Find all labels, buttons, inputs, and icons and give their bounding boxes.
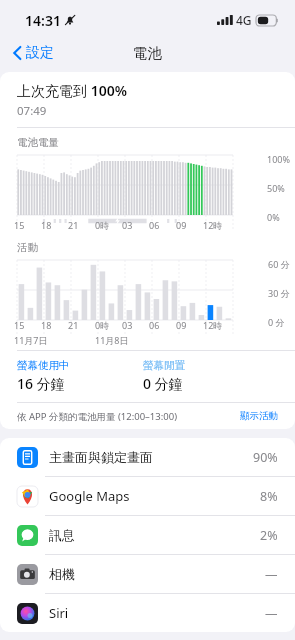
staticText: 0% <box>267 211 280 223</box>
staticText: 螢幕使用中 <box>17 359 70 372</box>
staticText: 0 分鐘 <box>143 374 183 393</box>
staticText: 0 分 <box>268 316 285 328</box>
button[interactable]: 相機 <box>0 555 295 594</box>
staticText: 100% <box>267 153 290 165</box>
staticText: 21 <box>68 219 79 231</box>
staticText: 11月7日 <box>14 334 48 346</box>
staticText: Google Maps <box>49 487 130 505</box>
staticText: 16 分鐘 <box>17 374 65 393</box>
button[interactable]: Siri <box>0 594 295 632</box>
staticText: 12時 <box>203 319 223 331</box>
staticText: — <box>265 605 278 622</box>
staticText: 螢幕閒置 <box>143 359 185 372</box>
staticText: 主畫面與鎖定畫面 <box>49 449 153 465</box>
staticText: 90% <box>253 449 278 466</box>
staticText: 21 <box>68 319 79 331</box>
staticText: 60 分 <box>268 258 290 270</box>
staticText: 相機 <box>49 566 75 582</box>
staticText: 14:31 <box>25 11 61 30</box>
staticText: 03 <box>122 219 133 231</box>
staticText: 2% <box>260 527 278 544</box>
staticText: 電池 <box>133 44 162 62</box>
staticText: 07:49 <box>17 103 47 119</box>
button[interactable]: 主畫面與鎖定畫面 <box>0 438 295 477</box>
staticText: 11月8日 <box>95 334 129 346</box>
staticText: 06 <box>149 319 160 331</box>
button[interactable]: Google Maps <box>0 477 295 516</box>
staticText: 15 <box>14 219 25 231</box>
staticText: 30 分 <box>268 287 290 299</box>
staticText: 09 <box>176 319 187 331</box>
staticText: 顯示活動 <box>240 410 278 422</box>
button[interactable]: 顯示活動 <box>240 410 278 422</box>
staticText: 0時 <box>95 319 110 331</box>
button[interactable]: 訊息 <box>0 516 295 555</box>
staticText: — <box>265 566 278 583</box>
staticText: 18 <box>41 319 52 331</box>
staticText: 8% <box>260 488 278 505</box>
staticText: 活動 <box>17 241 38 254</box>
staticText: 電池電量 <box>17 136 59 149</box>
staticText: 4G <box>236 12 252 28</box>
staticText: 09 <box>176 219 187 231</box>
staticText: Siri <box>49 604 69 622</box>
staticText: 06 <box>149 219 160 231</box>
staticText: 依 APP 分類的電池用量 (12:00–13:00) <box>17 410 177 423</box>
staticText: 50% <box>267 182 285 194</box>
staticText: 18 <box>41 219 52 231</box>
staticText: 03 <box>122 319 133 331</box>
staticText: 12時 <box>203 219 223 231</box>
staticText: 15 <box>14 319 25 331</box>
staticText: 設定 <box>26 44 54 62</box>
button[interactable]: 設定 <box>9 41 58 65</box>
staticText: 上次充電到 100% <box>17 81 127 100</box>
staticText: 0時 <box>95 219 110 231</box>
staticText: 訊息 <box>49 527 75 543</box>
